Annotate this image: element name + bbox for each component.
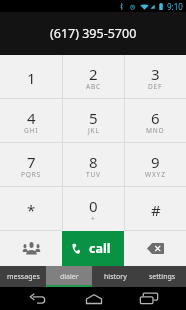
staticText: 3 (151, 64, 160, 84)
button[interactable]: Contacts (0, 230, 62, 266)
staticText: ABC (86, 82, 102, 91)
button[interactable]: 3 (125, 55, 186, 98)
staticText: * (27, 200, 36, 220)
button[interactable]: dialer (46, 266, 92, 287)
button[interactable]: (617) 395-5700 (0, 12, 186, 55)
button[interactable]: Backspace (124, 230, 186, 266)
staticText: messages (7, 272, 40, 282)
staticText: PQRS (21, 170, 42, 179)
button[interactable]: Recents (133, 287, 164, 310)
staticText: 0 (89, 196, 98, 216)
button[interactable]: 2 (63, 55, 124, 98)
staticText: 8 (89, 152, 98, 172)
staticText: 4 (27, 108, 36, 128)
staticText: settings (149, 272, 176, 282)
staticText: + (91, 214, 96, 223)
staticText: (617) 395-5700 (50, 25, 137, 42)
staticText: 7 (27, 152, 36, 172)
staticText: call (89, 240, 111, 257)
button[interactable]: # (125, 187, 186, 230)
staticText: DEF (148, 82, 163, 91)
button[interactable]: settings (139, 266, 186, 287)
staticText: history (104, 272, 127, 282)
button[interactable]: 9 (125, 143, 186, 186)
button[interactable]: call (62, 231, 124, 266)
button[interactable]: Back (22, 287, 53, 310)
button[interactable]: 5 (63, 99, 124, 142)
button[interactable]: 4 (0, 99, 62, 142)
button[interactable]: * (0, 187, 62, 230)
button[interactable]: messages (0, 266, 46, 287)
staticText: dialer (60, 272, 79, 282)
staticText: 6 (151, 108, 160, 128)
button[interactable]: 8 (63, 143, 124, 186)
staticText: 5 (89, 108, 98, 128)
button[interactable]: 0 (63, 187, 124, 230)
staticText: 9:10 (167, 1, 183, 12)
staticText: JKL (88, 126, 100, 135)
button[interactable]: history (92, 266, 139, 287)
button[interactable]: 1 (0, 55, 62, 98)
staticText: 9 (151, 152, 160, 172)
button[interactable]: 6 (125, 99, 186, 142)
staticText: GHI (24, 126, 39, 135)
staticText: 1 (27, 68, 36, 88)
button[interactable]: Home (78, 287, 109, 310)
staticText: TUV (86, 170, 101, 179)
staticText: 2 (89, 64, 98, 84)
button[interactable]: 7 (0, 143, 62, 186)
staticText: WXYZ (145, 170, 166, 179)
staticText: # (151, 200, 161, 220)
staticText: MNO (146, 126, 165, 135)
